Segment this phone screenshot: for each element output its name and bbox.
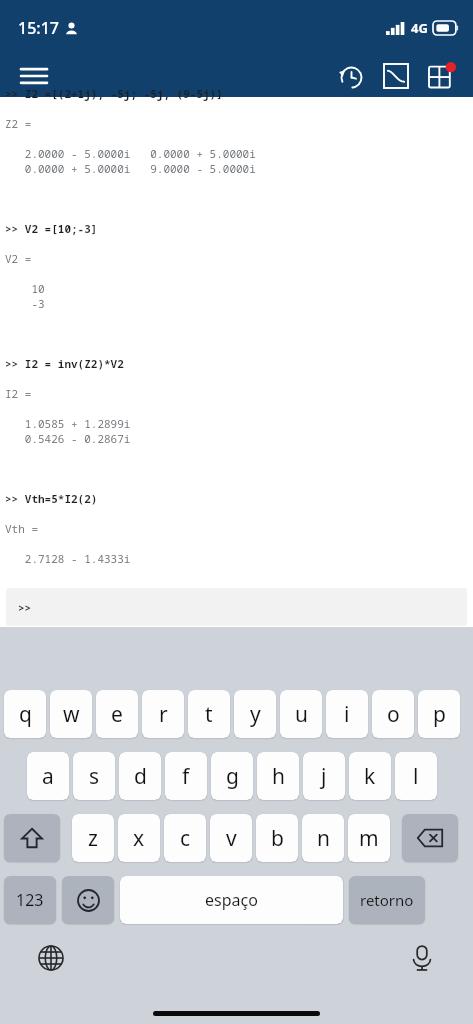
staticText: 2.0000 - 5.0000i 0.0000 + 5.0000i [5, 146, 256, 161]
button[interactable]: f [165, 752, 207, 800]
button[interactable]: k [349, 752, 391, 800]
button[interactable]: Backspace [402, 814, 458, 862]
staticText: f [182, 762, 190, 791]
staticText: q [19, 700, 32, 729]
staticText: >> I2 = inv(Z2)*V2 [5, 356, 124, 371]
staticText: 15:17 [18, 17, 59, 39]
button[interactable]: Shift [4, 814, 60, 862]
button[interactable]: j [303, 752, 345, 800]
staticText: -3 [5, 296, 45, 311]
button[interactable]: s [73, 752, 115, 800]
staticText: h [272, 762, 285, 791]
staticText: w [63, 700, 80, 729]
button[interactable]: u [280, 690, 322, 738]
staticText: Vth = [5, 521, 38, 536]
staticText: d [134, 762, 147, 791]
button[interactable]: Emoji [62, 876, 114, 924]
staticText: j [321, 762, 327, 791]
staticText: t [205, 700, 213, 729]
staticText: >> V2 =[10;-3] [5, 221, 98, 236]
staticText: >> Z2 =[(2+1j), -5j; -5j, (9-5j)] [5, 86, 223, 101]
button[interactable]: a [27, 752, 69, 800]
staticText: 1.0585 + 1.2899i [5, 416, 131, 431]
staticText: z [88, 824, 98, 853]
staticText: e [111, 700, 123, 729]
button[interactable]: t [188, 690, 230, 738]
staticText: b [271, 824, 284, 853]
staticText: x [133, 824, 145, 853]
staticText: >> Vth=5*I2(2) [5, 491, 98, 506]
staticText: espaço [205, 889, 258, 911]
button[interactable]: e [96, 690, 138, 738]
staticText: l [413, 762, 419, 791]
button[interactable]: 123 [4, 876, 56, 924]
staticText: 0.5426 - 0.2867i [5, 431, 131, 446]
button[interactable]: retorno [349, 876, 425, 924]
button[interactable]: Dictate [405, 941, 439, 975]
button[interactable]: espaço [120, 876, 343, 924]
staticText: V2 = [5, 251, 32, 266]
button[interactable]: y [234, 690, 276, 738]
button[interactable]: History [327, 55, 373, 97]
button[interactable]: Workspace [419, 55, 465, 97]
button[interactable]: c [164, 814, 206, 862]
button[interactable]: d [119, 752, 161, 800]
staticText: g [226, 762, 239, 791]
button[interactable]: h [257, 752, 299, 800]
staticText: v [226, 824, 237, 853]
button[interactable]: q [4, 690, 46, 738]
button[interactable]: l [395, 752, 437, 800]
staticText: retorno [360, 890, 414, 910]
staticText: >> [18, 600, 32, 615]
staticText: Z2 = [5, 116, 32, 131]
button[interactable]: o [372, 690, 414, 738]
staticText: p [433, 700, 446, 729]
button[interactable]: w [50, 690, 92, 738]
staticText: 4G [411, 19, 428, 37]
staticText: r [159, 700, 168, 729]
staticText: u [295, 700, 308, 729]
staticText: c [180, 824, 191, 853]
staticText: 123 [16, 889, 44, 911]
button[interactable]: Plot [373, 55, 419, 97]
button[interactable]: r [142, 690, 184, 738]
staticText: o [387, 700, 400, 729]
staticText: 2.7128 - 1.4333i [5, 551, 131, 566]
button[interactable]: Menu [12, 55, 56, 97]
button[interactable]: g [211, 752, 253, 800]
staticText: m [359, 824, 379, 853]
button[interactable]: z [72, 814, 114, 862]
button[interactable]: b [256, 814, 298, 862]
button[interactable]: p [418, 690, 460, 738]
staticText: 10 [5, 281, 45, 296]
button[interactable]: v [210, 814, 252, 862]
button[interactable]: i [326, 690, 368, 738]
staticText: s [89, 762, 100, 791]
staticText: y [250, 700, 261, 729]
staticText: 0.0000 + 5.0000i 9.0000 - 5.0000i [5, 161, 256, 176]
button[interactable]: m [348, 814, 390, 862]
staticText: I2 = [5, 386, 32, 401]
button[interactable]: n [302, 814, 344, 862]
button[interactable]: >> [6, 588, 467, 626]
button[interactable]: Change keyboard [34, 941, 68, 975]
button[interactable]: x [118, 814, 160, 862]
staticText: i [344, 700, 350, 729]
